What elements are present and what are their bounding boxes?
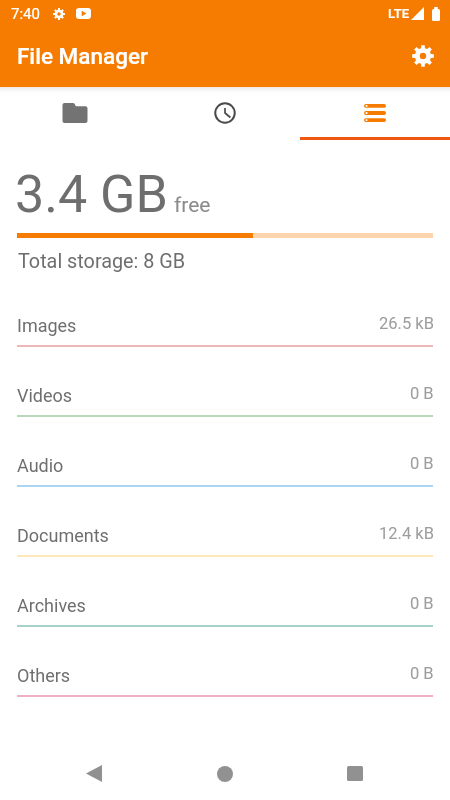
- staticText: LTE: [388, 6, 409, 21]
- button[interactable]: Recent: [150, 87, 300, 137]
- staticText: Images: [17, 315, 77, 336]
- staticText: Audio: [17, 455, 64, 476]
- staticText: 0 B: [410, 384, 434, 403]
- button[interactable]: Images: [0, 305, 450, 375]
- button[interactable]: Audio: [0, 445, 450, 515]
- button[interactable]: Folders: [0, 87, 150, 137]
- staticText: 3.4 GB: [15, 164, 168, 225]
- button[interactable]: Storage: [300, 87, 450, 137]
- button[interactable]: Documents: [0, 515, 450, 585]
- button[interactable]: Videos: [0, 375, 450, 445]
- button[interactable]: Recents: [331, 750, 378, 797]
- staticText: 0 B: [410, 454, 434, 473]
- staticText: 12.4 kB: [379, 524, 434, 543]
- staticText: Videos: [17, 385, 73, 406]
- staticText: Others: [17, 665, 71, 686]
- staticText: Documents: [17, 525, 109, 546]
- button[interactable]: Settings: [401, 35, 445, 79]
- staticText: 26.5 kB: [379, 314, 434, 333]
- staticText: Total storage: 8 GB: [18, 250, 186, 273]
- staticText: 7:40: [11, 5, 40, 23]
- button[interactable]: Archives: [0, 585, 450, 655]
- button[interactable]: Back: [70, 750, 117, 797]
- staticText: 0 B: [410, 594, 434, 613]
- staticText: Archives: [17, 595, 86, 616]
- button[interactable]: Others: [0, 655, 450, 725]
- staticText: free: [174, 193, 211, 218]
- staticText: 0 B: [410, 664, 434, 683]
- staticText: File Manager: [17, 43, 148, 69]
- button[interactable]: Home: [201, 750, 248, 797]
